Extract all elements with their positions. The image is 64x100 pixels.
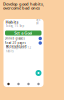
button[interactable]: Drink 8 glasses [5,36,41,40]
staticText: overcome bad ones [3,5,40,11]
staticText: See all [36,18,41,25]
staticText: Today, 15 Sep [5,24,24,28]
button[interactable]: Profile [33,81,43,87]
staticText: Read 20 pages [5,41,26,45]
button[interactable]: Goals [23,81,33,87]
button[interactable]: Add habit [35,70,41,76]
button[interactable]: Home [3,81,13,87]
staticText: Weekly Report [5,45,26,48]
staticText: Develop good habits, [3,1,44,7]
staticText: Drink 8 glasses [5,37,25,40]
staticText: Set a Goal [14,30,32,36]
button[interactable]: Read 20 pages [5,41,41,45]
button[interactable]: See all [33,20,41,23]
staticText: Habits [5,19,18,25]
button[interactable]: Set a Goal [5,30,41,35]
staticText: You completed 12 habits [5,46,31,53]
button[interactable]: Stats [13,81,23,87]
